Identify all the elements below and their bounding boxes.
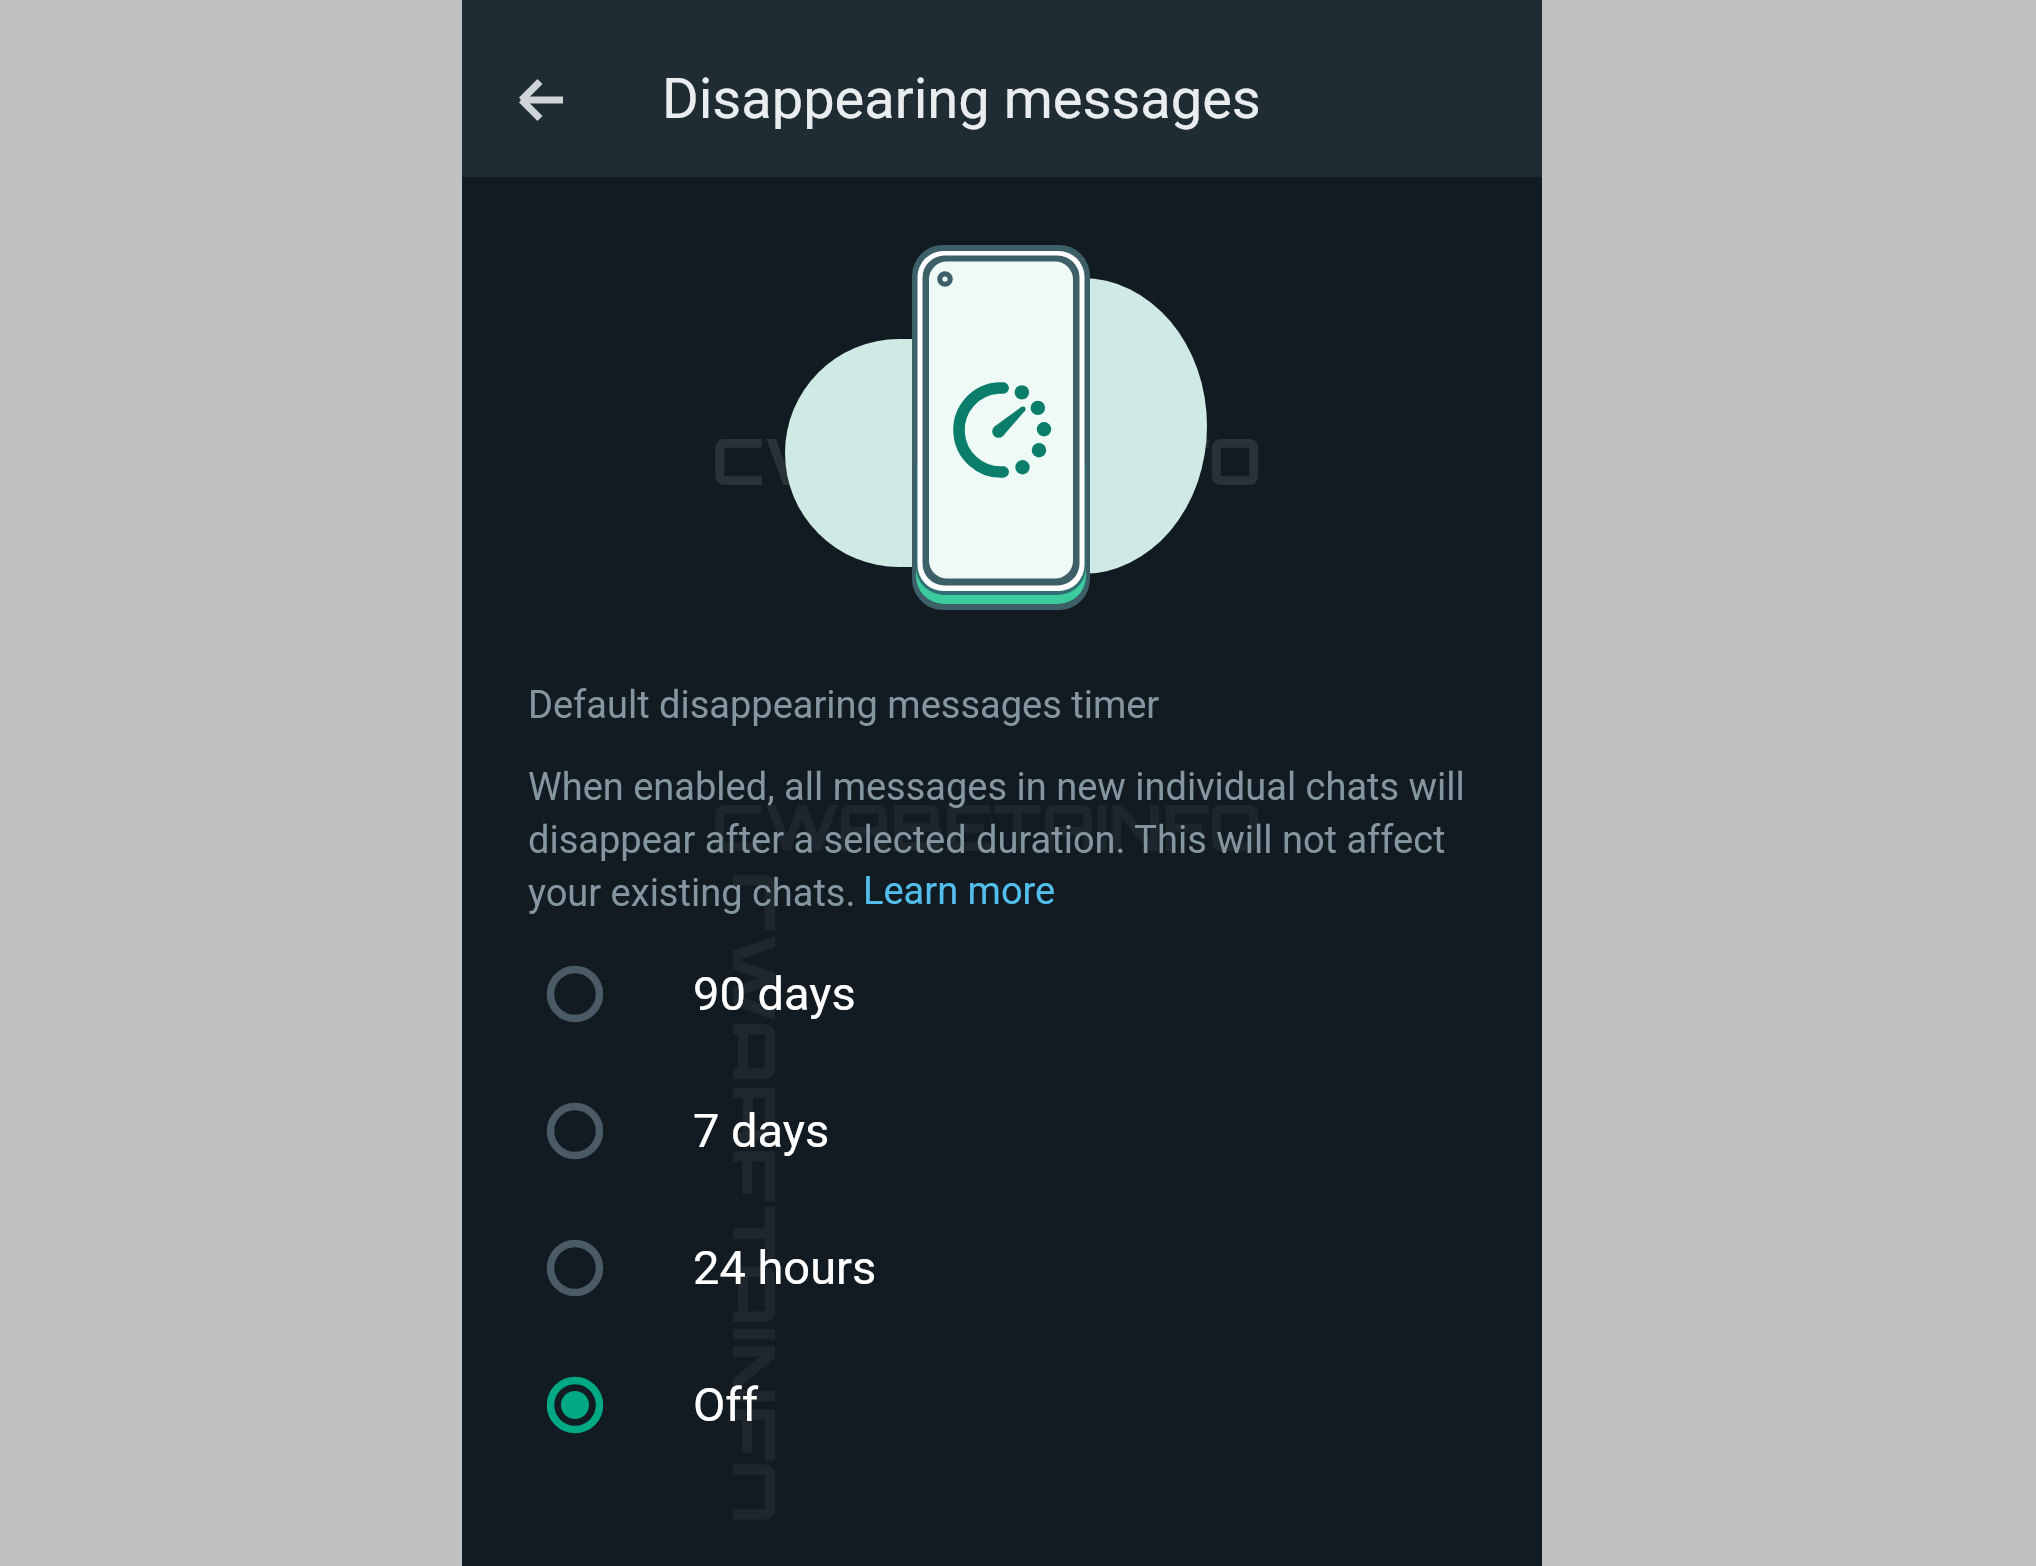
staticText: Disappearing messages (662, 66, 1261, 132)
staticText: CWABETAINFO (712, 420, 1262, 500)
staticText: When enabled, all messages in new indivi… (528, 765, 1468, 915)
staticText: Learn more (863, 869, 1056, 914)
staticText: 7 days (693, 1103, 830, 1158)
button[interactable]: 7 days (462, 1062, 1542, 1199)
staticText: CWABETAINFO (733, 871, 797, 1524)
staticText: Off (693, 1377, 759, 1432)
staticText: 24 hours (693, 1240, 877, 1295)
button[interactable]: Back (492, 52, 588, 148)
staticText: CWABETAINFO (712, 786, 1262, 866)
staticText: Default disappearing messages timer (528, 683, 1160, 728)
button[interactable]: 90 days (462, 925, 1542, 1062)
button[interactable]: 24 hours (462, 1199, 1542, 1336)
button[interactable]: Off (462, 1336, 1542, 1473)
staticText: 90 days (693, 966, 856, 1021)
button[interactable]: Learn more (863, 869, 1056, 914)
